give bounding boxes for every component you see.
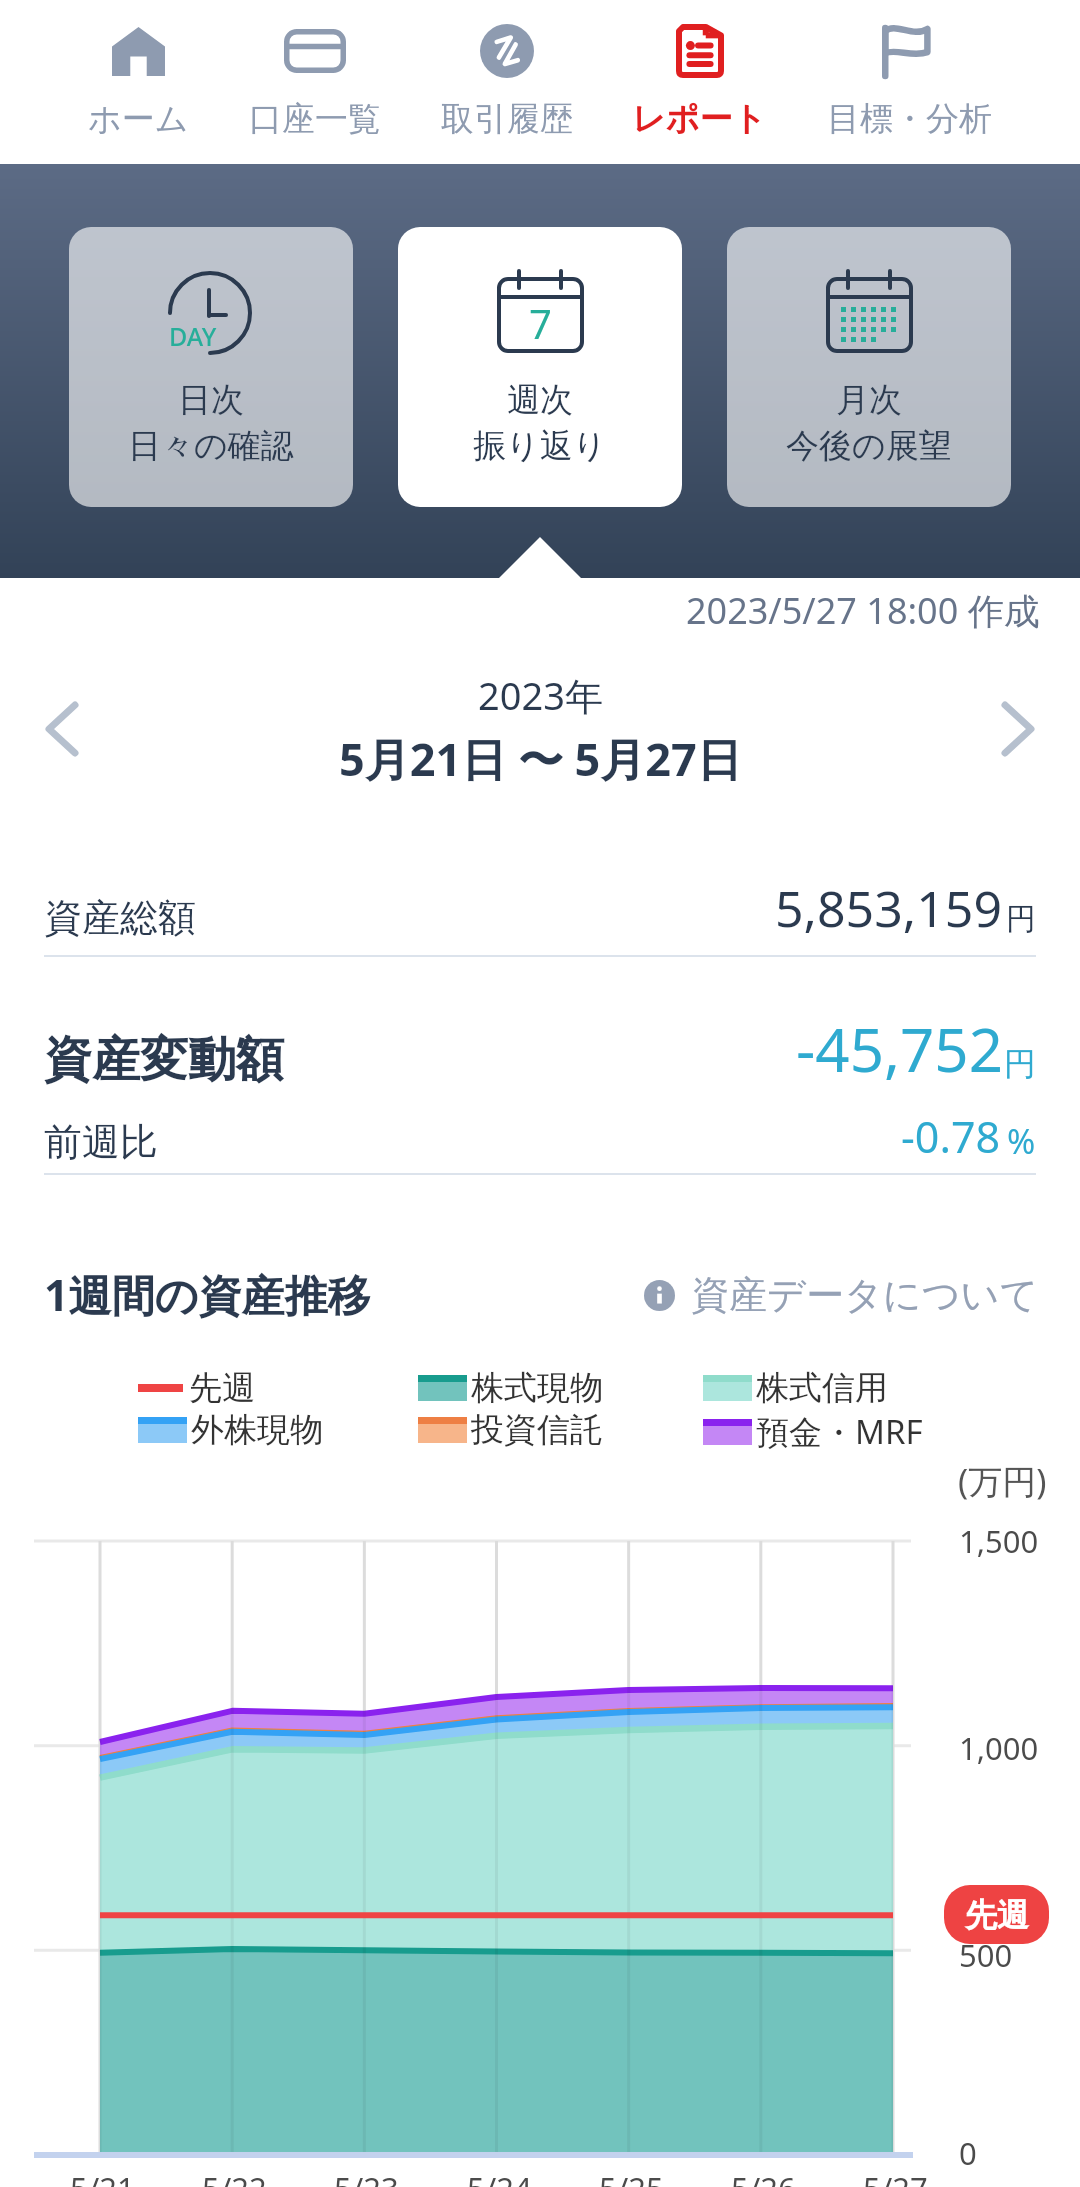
button[interactable]: レポート <box>632 0 767 164</box>
staticText: 5/26 <box>731 2167 796 2187</box>
staticText: 預金・MRF <box>756 1409 923 1454</box>
staticText: 円 <box>1004 1044 1036 1084</box>
staticText: 5/24 <box>467 2167 532 2187</box>
staticText: 1,000 <box>959 1727 1039 1769</box>
staticText: レポート <box>632 98 767 140</box>
staticText: 5/25 <box>599 2167 664 2187</box>
staticText: 先週 <box>965 1895 1029 1935</box>
staticText: 取引履歴 <box>441 98 573 140</box>
staticText: 5月21日 〜 5月27日 <box>339 728 742 789</box>
button[interactable]: ホーム <box>88 0 189 164</box>
staticText: 2023年 <box>478 669 603 721</box>
button[interactable]: 目標・分析 <box>827 0 992 164</box>
staticText: 0 <box>959 2132 977 2174</box>
staticText: 1,500 <box>959 1520 1039 1562</box>
staticText: 外株現物 <box>191 1409 323 1451</box>
staticText: -45,752 <box>796 1008 1003 1090</box>
button[interactable]: DAY <box>69 227 353 507</box>
staticText: 株式現物 <box>471 1367 603 1409</box>
staticText: 1週間の資産推移 <box>44 1265 371 1324</box>
staticText: 日次 <box>178 379 244 421</box>
staticText: 7 <box>529 296 552 350</box>
button[interactable]: 7 <box>398 227 682 507</box>
staticText: 5/22 <box>202 2167 267 2187</box>
staticText: 前週比 <box>44 1118 158 1166</box>
staticText: 2023/5/27 18:00 作成 <box>686 586 1040 635</box>
button[interactable]: 月次 <box>727 227 1011 507</box>
button[interactable]: 次の週 <box>982 693 1054 765</box>
button[interactable]: 口座一覧 <box>249 0 381 164</box>
staticText: (万円) <box>958 1458 1047 1504</box>
staticText: 先週 <box>189 1367 255 1409</box>
staticText: 週次 <box>507 379 573 421</box>
staticText: ホーム <box>88 98 189 140</box>
staticText: 5/27 <box>863 2167 928 2187</box>
staticText: % <box>1007 1118 1036 1164</box>
staticText: 投資信託 <box>471 1409 603 1451</box>
staticText: 5/23 <box>334 2167 399 2187</box>
staticText: 日々の確認 <box>128 425 294 467</box>
staticText: 5/21 <box>70 2167 135 2187</box>
staticText: 月次 <box>836 379 902 421</box>
button[interactable]: 前の週 <box>26 693 98 765</box>
button[interactable]: 取引履歴 <box>441 0 573 164</box>
staticText: 500 <box>959 1934 1013 1976</box>
staticText: DAY <box>169 319 217 353</box>
staticText: 今後の展望 <box>786 425 952 467</box>
staticText: 資産総額 <box>44 894 196 942</box>
button[interactable]: 先週 <box>944 1885 1049 1944</box>
staticText: 5,853,159 <box>775 874 1002 942</box>
staticText: 資産データについて <box>691 1271 1039 1319</box>
staticText: -0.78 <box>901 1107 1001 1166</box>
staticText: 資産変動額 <box>44 1030 284 1090</box>
staticText: 株式信用 <box>756 1367 888 1409</box>
staticText: 目標・分析 <box>827 98 992 140</box>
staticText: 振り返り <box>473 425 607 467</box>
button[interactable]: 資産データについて <box>644 1271 1039 1319</box>
staticText: 口座一覧 <box>249 98 381 140</box>
staticText: 円 <box>1006 900 1036 938</box>
